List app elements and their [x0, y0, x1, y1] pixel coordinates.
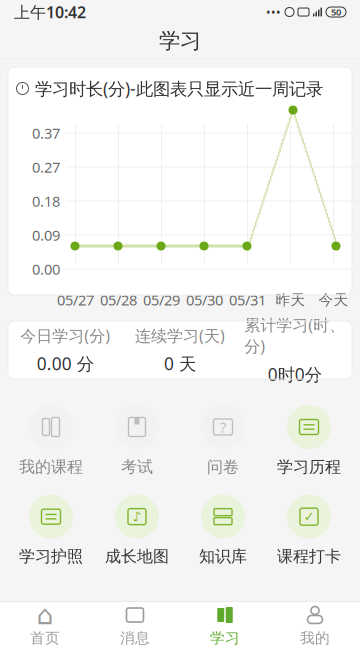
staticText: 我的课程 — [19, 457, 83, 477]
staticText: 05/27 — [57, 290, 94, 309]
staticText: 学习历程 — [277, 457, 341, 477]
staticText: 0.00 分 — [37, 352, 94, 375]
staticText: 课程打卡 — [277, 547, 341, 566]
staticText: 0.27 — [32, 157, 60, 177]
staticText: ? — [220, 417, 226, 437]
staticText: 学习时长(分)-此图表只显示近一周记录 — [35, 77, 323, 100]
staticText: 0.37 — [32, 123, 60, 143]
staticText: 昨天 — [275, 291, 305, 309]
button[interactable]: ? — [180, 405, 266, 477]
button[interactable]: 我的课程 — [8, 405, 94, 477]
staticText: ⌂ — [36, 600, 53, 630]
button[interactable]: ⌂ — [0, 605, 90, 647]
button[interactable]: 消息 — [90, 605, 180, 647]
staticText: 05/29 — [143, 290, 180, 309]
staticText: 上午10:42 — [14, 1, 86, 23]
staticText: ✓ — [303, 509, 314, 524]
button[interactable]: 学习护照 — [8, 495, 94, 566]
staticText: 学习护照 — [19, 547, 83, 566]
button[interactable]: ✓ — [266, 495, 352, 566]
staticText: ♪ — [132, 509, 141, 524]
staticText: 消息 — [120, 629, 150, 647]
button[interactable]: 学习历程 — [266, 405, 352, 477]
staticText: 我的 — [300, 629, 330, 647]
staticText: 考试 — [121, 457, 153, 477]
staticText: 问卷 — [207, 457, 239, 477]
button[interactable]: 考试 — [94, 405, 180, 477]
staticText: 50 — [331, 6, 341, 18]
staticText: 首页 — [30, 629, 60, 647]
staticText: 05/30 — [186, 290, 223, 309]
staticText: 成长地图 — [105, 547, 169, 566]
staticText: 0 天 — [164, 352, 196, 375]
button[interactable]: 我的 — [270, 605, 360, 647]
staticText: 05/31 — [229, 290, 266, 309]
staticText: 0.09 — [32, 225, 60, 245]
staticText: 学习 — [159, 28, 201, 54]
button[interactable]: ♪ — [94, 495, 180, 566]
staticText: 今日学习(分) — [20, 325, 110, 346]
staticText: 0时0分 — [268, 363, 322, 386]
button[interactable]: 知识库 — [180, 495, 266, 566]
staticText: 累计学习(时、分) — [244, 314, 345, 357]
staticText: 连续学习(天) — [135, 325, 225, 346]
staticText: 0.18 — [32, 191, 60, 211]
staticText: 今天 — [318, 291, 348, 309]
staticText: 05/28 — [100, 290, 137, 309]
staticText: 学习 — [210, 629, 240, 647]
staticText: ••• — [266, 4, 281, 20]
staticText: 知识库 — [199, 547, 247, 566]
staticText: 0.00 — [32, 259, 60, 279]
button[interactable]: 学习 — [180, 605, 270, 647]
